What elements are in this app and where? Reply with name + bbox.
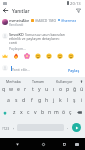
button[interactable]: ?123 bbox=[0, 121, 11, 134]
staticText: n bbox=[48, 109, 52, 116]
button[interactable]: Emoji bbox=[57, 53, 63, 59]
staticText: b bbox=[41, 109, 45, 116]
staticText: h bbox=[45, 97, 49, 104]
button[interactable]: h bbox=[43, 95, 50, 105]
staticText: l bbox=[67, 97, 69, 104]
button[interactable]: e bbox=[15, 84, 22, 94]
button[interactable]: Profile photo bbox=[2, 19, 8, 25]
button[interactable]: c bbox=[25, 107, 32, 118]
button[interactable]: Kullanıyor bbox=[50, 77, 78, 85]
staticText: Paylaşım... bbox=[9, 46, 26, 51]
staticText: p bbox=[66, 86, 70, 93]
button[interactable]: p bbox=[64, 84, 71, 94]
staticText: Merhaba bbox=[6, 79, 21, 84]
staticText: etkinlik ve paylaşım detaylarını bbox=[9, 36, 60, 41]
button[interactable]: Filter bbox=[73, 6, 84, 15]
button[interactable]: Emoji bbox=[46, 53, 52, 59]
button[interactable]: . bbox=[64, 121, 71, 134]
staticText: Yanıt ekle... bbox=[12, 67, 30, 72]
button[interactable]: Fire emoji bbox=[13, 53, 19, 59]
button[interactable]: Blossom emoji bbox=[24, 53, 30, 59]
staticText: eşmejsAbe bbox=[9, 18, 30, 22]
staticText: v bbox=[34, 109, 37, 116]
button[interactable]: m bbox=[53, 107, 60, 118]
staticText: m bbox=[54, 109, 59, 116]
button[interactable]: k bbox=[57, 95, 64, 105]
button[interactable]: Shift bbox=[0, 107, 10, 118]
staticText: w bbox=[9, 86, 14, 93]
staticText: f bbox=[31, 97, 33, 104]
staticText: j bbox=[53, 97, 55, 104]
button[interactable]: x bbox=[18, 107, 25, 118]
button[interactable]: , bbox=[10, 121, 17, 134]
staticText: t bbox=[32, 86, 34, 93]
staticText: conti bbox=[9, 40, 18, 45]
button[interactable]: Home bbox=[38, 138, 48, 150]
button[interactable]: ı bbox=[50, 84, 57, 94]
staticText: g bbox=[38, 97, 42, 104]
staticText: ö bbox=[62, 109, 66, 116]
button[interactable]: ü bbox=[78, 84, 85, 94]
staticText: u bbox=[45, 86, 49, 93]
button[interactable]: q bbox=[0, 84, 8, 94]
button[interactable]: Emoji bbox=[35, 53, 41, 59]
staticText: s bbox=[15, 97, 18, 104]
staticText: 20:13 bbox=[70, 1, 81, 7]
button[interactable]: Send bbox=[72, 123, 81, 132]
button[interactable]: Merhaba bbox=[0, 77, 26, 85]
button[interactable]: d bbox=[20, 95, 28, 105]
button[interactable]: r bbox=[22, 84, 29, 94]
staticText: a bbox=[7, 97, 10, 104]
button[interactable]: i bbox=[78, 95, 85, 105]
staticText: . bbox=[67, 124, 69, 130]
staticText: x bbox=[20, 109, 23, 116]
button[interactable]: Back bbox=[0, 6, 11, 15]
button[interactable]: ş bbox=[71, 95, 78, 105]
button[interactable]: ö bbox=[60, 107, 67, 118]
staticText: ?123 bbox=[2, 126, 10, 130]
button[interactable]: Emoji bbox=[68, 53, 74, 59]
button[interactable]: Recent apps bbox=[60, 138, 69, 150]
button[interactable]: t bbox=[29, 84, 36, 94]
button[interactable]: v bbox=[32, 107, 39, 118]
button[interactable]: j bbox=[50, 95, 57, 105]
button[interactable]: Back bbox=[12, 138, 22, 150]
staticText: z bbox=[13, 109, 16, 116]
button[interactable]: Switch keyboard bbox=[72, 138, 81, 150]
staticText: r bbox=[24, 86, 27, 93]
button[interactable]: a bbox=[4, 95, 12, 105]
staticText: k bbox=[59, 97, 62, 104]
button[interactable]: Crown emoji bbox=[2, 53, 8, 59]
staticText: d bbox=[22, 97, 26, 104]
button[interactable]: b bbox=[39, 107, 46, 118]
staticText: Yanıtlandı bbox=[9, 23, 24, 27]
staticText: i bbox=[81, 97, 83, 104]
button[interactable]: u bbox=[43, 84, 50, 94]
button[interactable]: Paylaş bbox=[65, 67, 82, 74]
staticText: ş bbox=[73, 97, 76, 104]
button[interactable]: w bbox=[8, 84, 15, 94]
button[interactable]: ç bbox=[67, 107, 74, 118]
button[interactable]: s bbox=[12, 95, 20, 105]
staticText: , bbox=[13, 124, 15, 130]
staticText: ı bbox=[53, 86, 55, 93]
button[interactable]: y bbox=[36, 84, 43, 94]
button[interactable]: ğ bbox=[71, 84, 78, 94]
button[interactable]: Profile bbox=[2, 33, 8, 39]
button[interactable]: More suggestions bbox=[78, 77, 85, 85]
staticText: Sonuçsuz uzun kapışılan, bbox=[25, 32, 66, 36]
button[interactable]: Tamam bbox=[26, 77, 50, 85]
button[interactable]: f bbox=[28, 95, 36, 105]
button[interactable]: g bbox=[36, 95, 43, 105]
button[interactable]: Profile bbox=[2, 65, 8, 71]
button[interactable]: Backspace bbox=[74, 107, 84, 118]
button[interactable]: z bbox=[11, 107, 18, 118]
button[interactable]: o bbox=[57, 84, 64, 94]
button[interactable]: n bbox=[46, 107, 53, 118]
staticText: e bbox=[17, 86, 20, 93]
staticText: Paylaş bbox=[68, 68, 80, 73]
staticText: Tamam bbox=[32, 79, 45, 84]
button[interactable]: l bbox=[64, 95, 71, 105]
staticText: ü bbox=[80, 86, 84, 93]
